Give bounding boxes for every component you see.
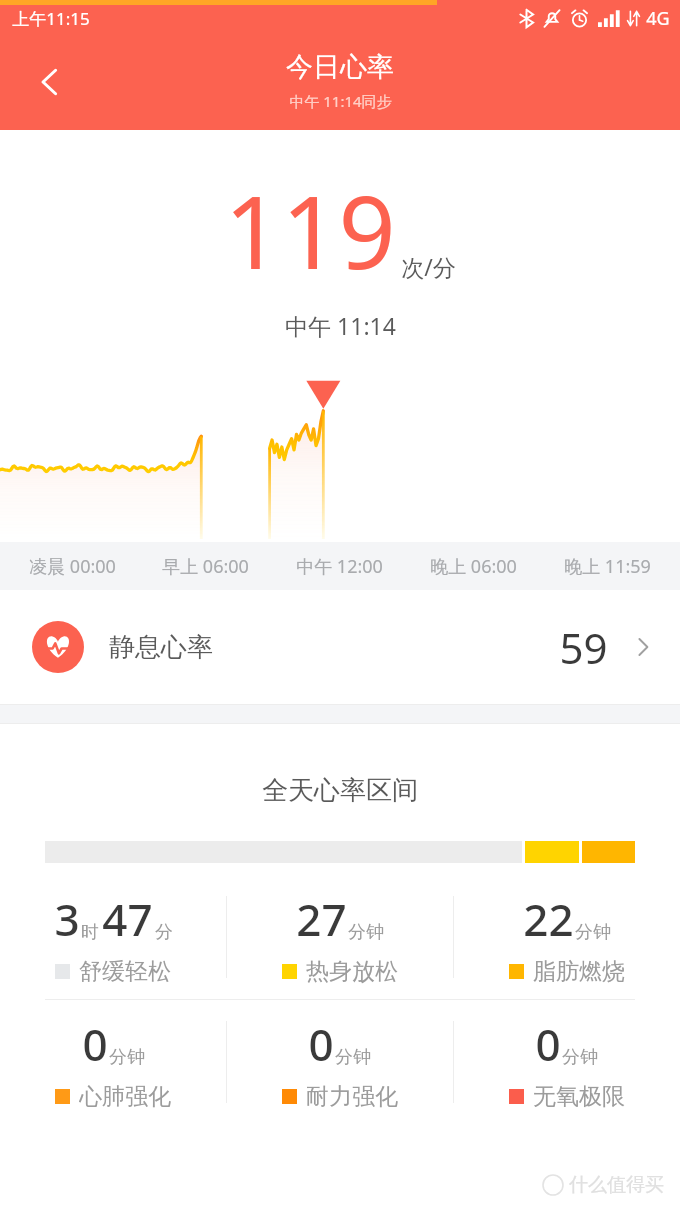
staticText: 什么值得买 — [569, 1173, 664, 1197]
staticText: 晚上 11:59 — [564, 554, 651, 579]
staticText: 3 — [54, 889, 80, 949]
button[interactable]: 3 — [0, 889, 226, 985]
button[interactable]: 0 — [226, 1014, 453, 1110]
staticText: 分钟 — [348, 921, 384, 944]
button[interactable]: Back — [18, 50, 82, 114]
staticText: 全天心率区间 — [262, 774, 418, 807]
staticText: 热身放松 — [306, 957, 398, 985]
staticText: 4G — [646, 6, 670, 31]
staticText: 静息心率 — [109, 631, 213, 664]
staticText: 0 — [535, 1014, 561, 1074]
staticText: 59 — [559, 619, 608, 676]
staticText: 0 — [308, 1014, 334, 1074]
staticText: 分钟 — [335, 1046, 371, 1069]
staticText: 分钟 — [562, 1046, 598, 1069]
staticText: 耐力强化 — [306, 1082, 398, 1110]
staticText: 分钟 — [575, 921, 611, 944]
staticText: 中午 12:00 — [296, 554, 383, 579]
staticText: 119 — [224, 162, 396, 298]
button[interactable]: 27 — [226, 889, 453, 985]
staticText: 22 — [523, 889, 574, 949]
staticText: 47 — [102, 889, 153, 949]
staticText: 晚上 06:00 — [430, 554, 517, 579]
staticText: 分钟 — [109, 1046, 145, 1069]
button[interactable]: 0 — [0, 1014, 226, 1110]
staticText: 上午11:15 — [12, 7, 90, 30]
staticText: 心肺强化 — [79, 1082, 171, 1110]
staticText: 无氧极限 — [533, 1082, 625, 1110]
button[interactable]: 0 — [453, 1014, 680, 1110]
staticText: 今日心率 — [286, 50, 394, 84]
other: Resting heart rate details — [632, 636, 654, 658]
button[interactable]: 静息心率 — [0, 590, 680, 704]
staticText: 0 — [82, 1014, 108, 1074]
staticText: 分 — [155, 921, 173, 944]
button[interactable]: 22 — [453, 889, 680, 985]
staticText: 早上 06:00 — [162, 554, 249, 579]
staticText: 时 — [81, 921, 99, 944]
staticText: 次/分 — [401, 251, 456, 282]
staticText: 中午 11:14同步 — [289, 91, 392, 111]
staticText: 中午 11:14 — [285, 310, 396, 341]
staticText: 舒缓轻松 — [79, 957, 171, 985]
staticText: 凌晨 00:00 — [29, 554, 116, 579]
staticText: 脂肪燃烧 — [533, 957, 625, 985]
staticText: 27 — [296, 889, 347, 949]
